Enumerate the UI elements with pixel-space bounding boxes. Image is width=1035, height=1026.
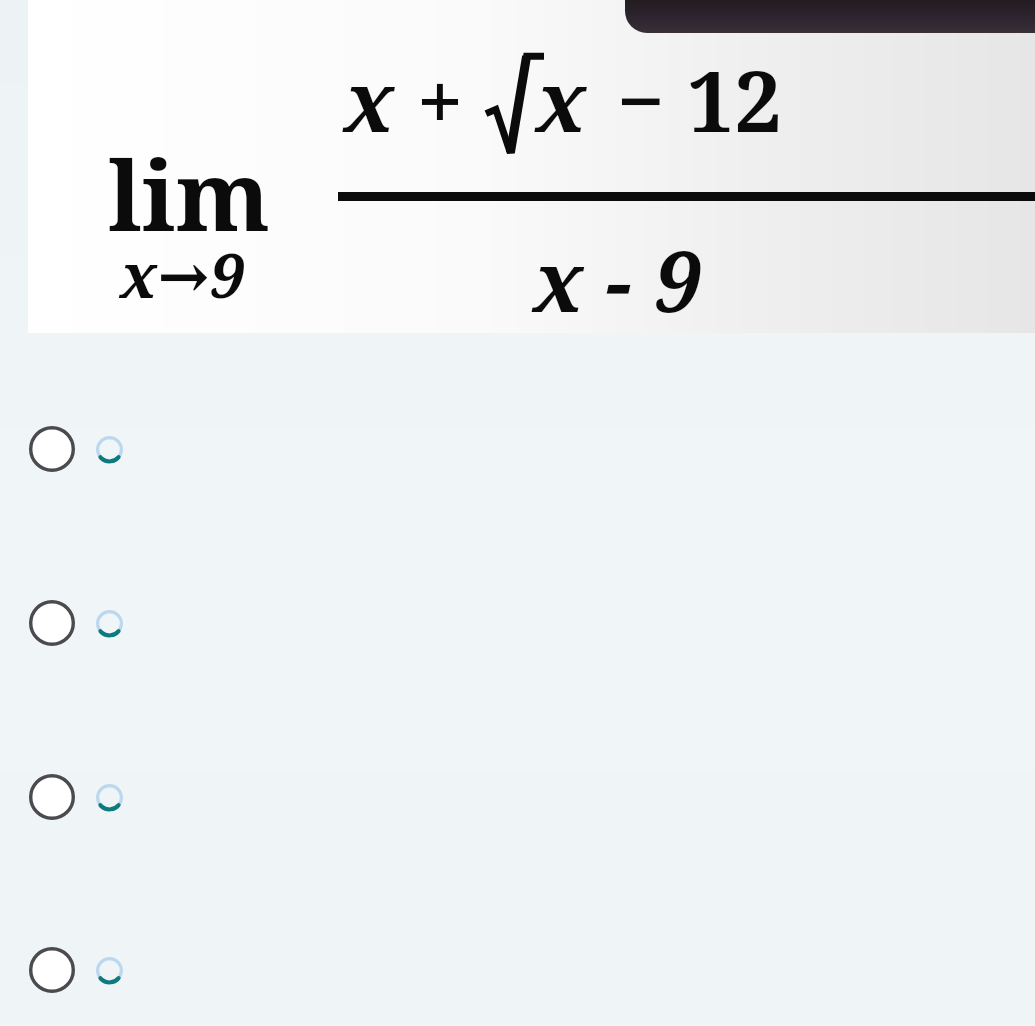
button[interactable]: Select answer option (0, 394, 1035, 504)
button[interactable]: Select answer option (0, 915, 1035, 1025)
staticText: lim (108, 128, 271, 259)
staticText: x + (344, 42, 486, 156)
staticText: − 12 (595, 42, 782, 156)
staticText: x − 9 (533, 222, 701, 336)
other: Select answer option (29, 600, 75, 646)
other: Select answer option (29, 947, 75, 993)
other: Select answer option (29, 426, 75, 472)
button[interactable]: Select answer option (0, 568, 1035, 678)
staticText: x→9 (120, 232, 245, 316)
button[interactable]: Select answer option (0, 742, 1035, 852)
other: Select answer option (29, 774, 75, 820)
staticText: x (536, 42, 587, 156)
